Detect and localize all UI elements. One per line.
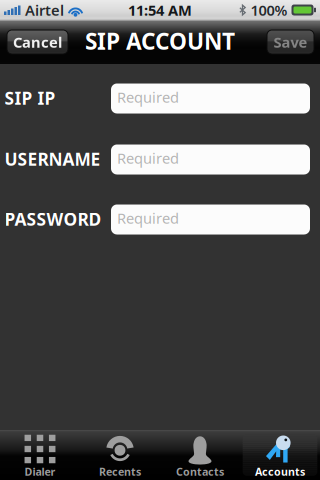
staticText: Cancel (13, 32, 62, 52)
staticText: Required (117, 87, 179, 107)
staticText: Required (117, 208, 179, 228)
staticText: Airtel (25, 0, 64, 20)
staticText: SIP ACCOUNT (85, 26, 235, 56)
staticText: 11:54 AM (128, 0, 192, 20)
staticText: Dialer (24, 464, 55, 479)
button[interactable]: Accounts (240, 430, 320, 480)
button[interactable]: Dialer (0, 430, 80, 480)
staticText: 100% (250, 0, 287, 20)
staticText: USERNAME (4, 147, 100, 170)
button[interactable]: Required (111, 204, 310, 234)
staticText: Save (273, 32, 307, 52)
staticText: Recents (99, 464, 141, 479)
button[interactable]: Contacts (160, 430, 240, 480)
button[interactable]: Recents (80, 430, 160, 480)
staticText: Required (117, 148, 179, 168)
staticText: Accounts (255, 464, 305, 479)
button[interactable]: Required (111, 144, 310, 174)
staticText: SIP IP (4, 86, 55, 109)
button[interactable]: Cancel (7, 30, 68, 54)
staticText: PASSWORD (4, 207, 101, 230)
button[interactable]: Save (267, 30, 314, 54)
button[interactable]: Required (111, 83, 310, 113)
staticText: Contacts (176, 464, 224, 479)
